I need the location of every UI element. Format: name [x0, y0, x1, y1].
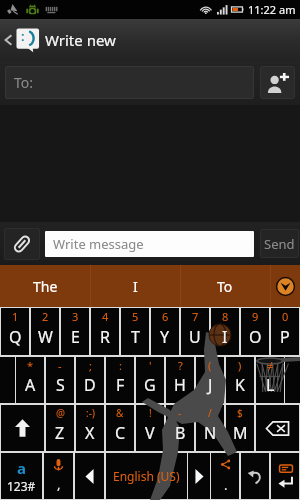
button[interactable]: [136, 357, 164, 403]
button[interactable]: [76, 405, 104, 451]
button[interactable]: Move cursor left: [75, 453, 104, 499]
other: Move cursor left: [85, 469, 94, 484]
button[interactable]: [46, 405, 74, 451]
button[interactable]: The: [0, 265, 90, 307]
button[interactable]: ;: [76, 357, 104, 403]
button[interactable]: [196, 405, 224, 451]
button[interactable]: To: [180, 265, 270, 307]
button[interactable]: [136, 405, 164, 451]
button[interactable]: Move cursor right: [188, 453, 210, 499]
button[interactable]: 8: [211, 308, 239, 355]
button[interactable]: [106, 453, 187, 499]
staticText: The: [33, 277, 58, 296]
button[interactable]: 3: [61, 308, 89, 355]
button[interactable]: [226, 405, 254, 451]
button[interactable]: 9: [241, 308, 269, 355]
button[interactable]: Enter: [271, 453, 299, 499]
button[interactable]: [106, 357, 134, 403]
button[interactable]: Attach: [4, 228, 40, 260]
button[interactable]: [76, 357, 104, 403]
staticText: English (US): [113, 468, 180, 484]
button[interactable]: Send: [260, 229, 299, 258]
button[interactable]: Share: [211, 453, 239, 499]
button[interactable]: More suggestions: [270, 265, 300, 307]
staticText: ): [238, 358, 242, 373]
button[interactable]: ): [226, 357, 254, 403]
button[interactable]: [181, 308, 209, 355]
button[interactable]: ≠: [256, 357, 284, 403]
button[interactable]: ?: [166, 357, 194, 403]
button[interactable]: Move cursor right: [188, 453, 210, 499]
button[interactable]: 5: [121, 308, 149, 355]
button[interactable]: &: [106, 405, 134, 451]
button[interactable]: [31, 308, 59, 355]
button[interactable]: [256, 357, 284, 403]
button[interactable]: [151, 308, 179, 355]
button[interactable]: [271, 308, 299, 355]
button[interactable]: @: [46, 405, 74, 451]
button[interactable]: 2: [31, 308, 59, 355]
button[interactable]: [75, 453, 104, 499]
button[interactable]: :: [106, 357, 134, 403]
button[interactable]: [1, 308, 29, 355]
button[interactable]: 6: [151, 308, 179, 355]
button[interactable]: *: [16, 357, 44, 403]
button[interactable]: /: [196, 405, 224, 451]
other: Voice input: [54, 459, 63, 472]
button[interactable]: -: [166, 405, 194, 451]
staticText: ?: [178, 358, 183, 373]
button[interactable]: Write message: [45, 231, 254, 257]
button[interactable]: [196, 357, 224, 403]
button[interactable]: To:: [5, 66, 254, 99]
button[interactable]: ': [136, 357, 164, 403]
staticText: 6: [162, 309, 169, 324]
button[interactable]: 1: [1, 308, 29, 355]
button[interactable]: [211, 453, 239, 499]
button[interactable]: -: [46, 357, 74, 403]
button[interactable]: 7: [181, 308, 209, 355]
button[interactable]: Backspace: [256, 405, 299, 451]
button[interactable]: English (US): [106, 453, 187, 499]
staticText: 1: [12, 309, 19, 324]
button[interactable]: 4: [91, 308, 119, 355]
staticText: D: [84, 374, 96, 396]
button[interactable]: I: [90, 265, 180, 307]
button[interactable]: Voice input: [44, 453, 73, 499]
button[interactable]: [241, 453, 269, 499]
button[interactable]: [44, 453, 73, 499]
button[interactable]: [256, 405, 299, 451]
other: Back: [2, 34, 14, 46]
button[interactable]: [166, 357, 194, 403]
button[interactable]: [61, 308, 89, 355]
button[interactable]: [211, 308, 239, 355]
button[interactable]: (: [196, 357, 224, 403]
staticText: W: [38, 326, 53, 348]
button[interactable]: [271, 453, 299, 499]
button[interactable]: Undo: [241, 453, 269, 499]
staticText: E: [71, 326, 80, 348]
staticText: A: [25, 374, 36, 396]
button[interactable]: Back: [0, 19, 300, 60]
button[interactable]: [106, 405, 134, 451]
button[interactable]: [46, 357, 74, 403]
staticText: U: [189, 326, 201, 348]
staticText: -: [178, 406, 182, 420]
button[interactable]: [91, 308, 119, 355]
button[interactable]: [1, 405, 44, 451]
staticText: P: [280, 326, 290, 348]
button[interactable]: Add contact: [260, 66, 295, 99]
staticText: C: [115, 422, 126, 444]
staticText: L: [266, 374, 275, 396]
button[interactable]: [1, 453, 42, 499]
button[interactable]: [241, 308, 269, 355]
button[interactable]: [166, 405, 194, 451]
button[interactable]: 0: [271, 308, 299, 355]
button[interactable]: [1, 405, 44, 451]
button[interactable]: $: [226, 405, 254, 451]
button[interactable]: :-): [76, 405, 104, 451]
button[interactable]: [16, 357, 44, 403]
button[interactable]: [226, 357, 254, 403]
button[interactable]: !: [136, 405, 164, 451]
button[interactable]: a: [1, 453, 42, 499]
button[interactable]: [121, 308, 149, 355]
